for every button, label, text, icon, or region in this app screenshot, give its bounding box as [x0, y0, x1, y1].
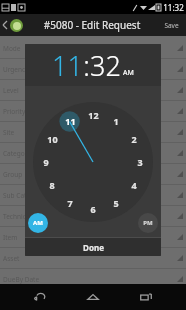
- button[interactable]: AM: [28, 213, 48, 233]
- button[interactable]: Priority: [3, 101, 183, 121]
- staticText: 3: [137, 156, 143, 168]
- staticText: 11: [65, 115, 76, 127]
- button[interactable]: Category: [3, 143, 183, 163]
- staticText: Priority: [3, 107, 177, 116]
- staticText: Category: [3, 149, 177, 158]
- button[interactable]: Site: [3, 122, 183, 142]
- staticText: 1: [113, 115, 119, 127]
- staticText: 2: [131, 133, 137, 145]
- button[interactable]: Recents: [133, 284, 159, 310]
- staticText: #5080 - Edit Request: [27, 18, 157, 32]
- staticText: 5: [113, 197, 119, 209]
- button[interactable]: Back: [27, 284, 53, 310]
- staticText: Technician: [3, 212, 177, 221]
- button[interactable]: 5: [109, 196, 123, 210]
- button[interactable]: Save: [157, 14, 186, 36]
- staticText: Sub Category: [3, 191, 177, 200]
- button[interactable]: 11: [63, 114, 77, 128]
- button[interactable]: 1: [109, 114, 123, 128]
- button[interactable]: Technician: [3, 206, 183, 226]
- button[interactable]: Asset: [3, 248, 183, 268]
- staticText: AM: [33, 219, 43, 227]
- staticText: Save: [164, 21, 179, 30]
- button[interactable]: Group: [3, 164, 183, 184]
- button[interactable]: 9: [39, 155, 53, 169]
- button[interactable]: PM: [138, 213, 158, 233]
- button[interactable]: Mode: [3, 38, 183, 58]
- button[interactable]: Item: [3, 227, 183, 247]
- button[interactable]: DueBy Date: [3, 269, 183, 289]
- button[interactable]: Level: [3, 80, 183, 100]
- button[interactable]: 7: [63, 196, 77, 210]
- button[interactable]: Back: [0, 14, 10, 36]
- button[interactable]: 12: [86, 108, 100, 122]
- staticText: 9: [43, 156, 49, 168]
- staticText: Group: [3, 170, 177, 179]
- button[interactable]: 32: [90, 47, 121, 84]
- staticText: AM: [123, 68, 134, 78]
- staticText: 11:32: [163, 2, 184, 13]
- staticText: Item: [3, 233, 177, 242]
- button[interactable]: Home: [80, 284, 106, 310]
- button[interactable]: Done: [25, 238, 161, 256]
- button[interactable]: 10: [45, 132, 59, 146]
- button[interactable]: Sub Category: [3, 185, 183, 205]
- button[interactable]: 8: [45, 178, 59, 192]
- staticText: 6: [90, 203, 96, 215]
- staticText: Asset: [3, 254, 177, 263]
- button[interactable]: 2: [127, 132, 141, 146]
- staticText: PM: [143, 219, 153, 227]
- staticText: 12: [88, 109, 99, 121]
- staticText: Urgency: [3, 65, 177, 74]
- staticText: :: [83, 47, 90, 84]
- staticText: 8: [49, 179, 55, 191]
- staticText: Mode: [3, 44, 177, 53]
- button[interactable]: Urgency: [3, 59, 183, 79]
- button[interactable]: 11: [52, 47, 83, 84]
- staticText: 4: [131, 179, 137, 191]
- staticText: 11: [52, 47, 83, 84]
- staticText: 10: [47, 133, 58, 145]
- staticText: Done: [83, 242, 104, 253]
- button[interactable]: 4: [127, 178, 141, 192]
- staticText: 7: [67, 197, 73, 209]
- staticText: 32: [90, 47, 121, 84]
- staticText: Level: [3, 86, 177, 95]
- staticText: Site: [3, 128, 177, 137]
- button[interactable]: 6: [86, 202, 100, 216]
- button[interactable]: 3: [133, 155, 147, 169]
